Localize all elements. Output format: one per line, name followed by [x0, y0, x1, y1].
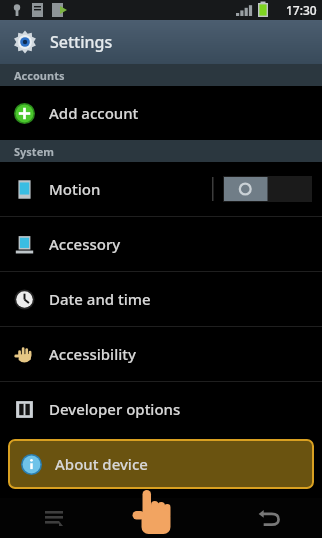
staticText: System	[14, 144, 54, 159]
button[interactable]: About device	[8, 439, 314, 489]
button[interactable]: Motion	[0, 162, 322, 216]
button[interactable]: Accessory	[0, 217, 322, 271]
button[interactable]: Menu	[32, 498, 76, 538]
button[interactable]: Add account	[0, 86, 322, 140]
staticText: Accounts	[14, 68, 65, 83]
staticText: Accessibility	[49, 344, 136, 364]
staticText: Add account	[49, 103, 139, 123]
staticText: Developer options	[49, 399, 181, 419]
staticText: Motion	[49, 179, 101, 199]
staticText: Accessory	[49, 234, 121, 254]
button[interactable]: Back	[246, 498, 290, 538]
button[interactable]: Motion on off	[212, 175, 312, 203]
staticText: 17:30	[286, 2, 317, 18]
button[interactable]: Home	[139, 498, 183, 538]
staticText: Date and time	[49, 289, 151, 309]
button[interactable]: Developer options	[0, 382, 322, 436]
button[interactable]: Accessibility	[0, 327, 322, 381]
staticText: About device	[55, 454, 148, 474]
staticText: Settings	[50, 31, 113, 53]
button[interactable]: Date and time	[0, 272, 322, 326]
